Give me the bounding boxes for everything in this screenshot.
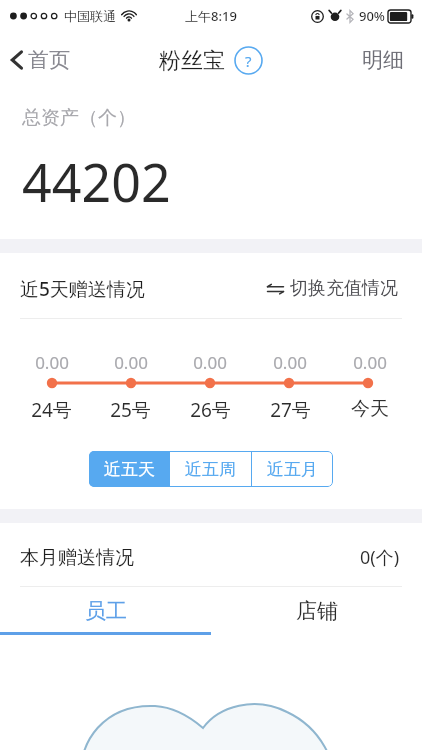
button[interactable]: 近五月 (252, 451, 333, 487)
staticText: 首页 (28, 47, 70, 73)
button[interactable]: 店铺 (211, 587, 422, 635)
button[interactable]: 近五天 (89, 451, 169, 487)
staticText: 27号 (270, 397, 311, 423)
staticText: 店铺 (296, 598, 338, 624)
staticText: 粉丝宝 (159, 47, 225, 75)
staticText: 员工 (85, 598, 127, 624)
staticText: 本月赠送情况 (20, 546, 134, 570)
staticText: 24号 (31, 397, 72, 423)
staticText: 近5天赠送情况 (20, 276, 145, 302)
staticText: 中国联通 (64, 8, 116, 24)
staticText: 切换充值情况 (290, 277, 398, 300)
button[interactable]: 帮助 (234, 46, 263, 75)
staticText: 近五天 (104, 459, 155, 480)
staticText: 近五月 (267, 459, 318, 480)
staticText: 0.00 (114, 351, 148, 374)
staticText: 上午8:19 (185, 7, 237, 25)
staticText: 44202 (22, 146, 171, 217)
staticText: 0(个) (360, 545, 400, 570)
staticText: 90% (359, 7, 385, 25)
staticText: 今天 (351, 397, 389, 421)
button[interactable]: 首页 (0, 41, 82, 79)
staticText: 26号 (190, 397, 231, 423)
staticText: 明细 (362, 47, 404, 73)
button[interactable]: 明细 (344, 39, 422, 81)
staticText: 25号 (110, 397, 151, 423)
staticText: ? (245, 51, 252, 71)
staticText: 0.00 (273, 351, 307, 374)
button[interactable]: 员工 (0, 587, 211, 635)
staticText: 0.00 (353, 351, 387, 374)
staticText: 近五周 (185, 459, 236, 480)
staticText: 总资产（个） (22, 106, 136, 130)
button[interactable]: 切换充值情况 (262, 273, 402, 304)
staticText: 0.00 (35, 351, 69, 374)
staticText: 0.00 (193, 351, 227, 374)
button[interactable]: 近五周 (170, 451, 251, 487)
